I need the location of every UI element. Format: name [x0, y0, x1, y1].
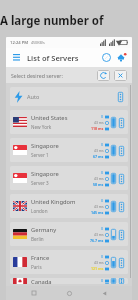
staticText: 76.7 ms	[90, 238, 104, 243]
button[interactable]: More options	[118, 278, 125, 284]
staticText: 43 ms	[94, 120, 104, 125]
staticText: 0	[101, 114, 104, 119]
staticText: 0	[101, 278, 104, 283]
button[interactable]: More options	[118, 200, 125, 213]
button[interactable]: Auto	[10, 87, 128, 106]
button[interactable]: Home	[62, 286, 76, 300]
staticText: 450KB/s	[31, 40, 45, 45]
staticText: Auto	[27, 93, 40, 100]
button[interactable]: Close	[114, 70, 127, 81]
staticText: United Kingdom	[31, 198, 76, 206]
staticText: London	[31, 208, 48, 214]
button[interactable]: Explore	[100, 51, 113, 64]
staticText: Singapore	[31, 142, 59, 150]
staticText: Germany	[31, 226, 57, 234]
staticText: New York	[31, 124, 52, 130]
staticText: 43 ms	[94, 204, 104, 209]
staticText: Canada	[31, 278, 52, 284]
button[interactable]: Singapore	[10, 138, 128, 162]
staticText: 0	[101, 142, 104, 147]
staticText: Paris	[31, 264, 42, 270]
staticText: 121 ms	[91, 266, 104, 271]
staticText: 43 ms	[94, 260, 104, 265]
staticText: Select desired server:	[11, 72, 63, 79]
staticText: A large number of servers	[0, 13, 138, 29]
button[interactable]: Singapore	[10, 166, 128, 190]
staticText: 43 ms	[94, 148, 104, 153]
staticText: 43 ms	[94, 232, 104, 237]
staticText: Server 1	[31, 152, 49, 158]
staticText: 118 ms	[91, 126, 104, 131]
button[interactable]: More options	[118, 256, 125, 269]
button[interactable]: Canada	[10, 278, 128, 284]
button[interactable]: Back	[97, 286, 111, 300]
button[interactable]: France	[10, 250, 128, 274]
staticText: 0	[101, 254, 104, 259]
button[interactable]: Refresh	[97, 70, 110, 81]
staticText: 67 ms	[93, 154, 104, 159]
staticText: 0	[101, 226, 104, 231]
staticText: 43 ms	[94, 176, 104, 181]
button[interactable]: Notifications	[114, 51, 127, 64]
staticText: Server 3	[31, 180, 49, 186]
button[interactable]: More options	[118, 116, 125, 129]
staticText: List of Servers	[27, 53, 79, 63]
staticText: 58 ms	[93, 182, 104, 187]
staticText: Berlin	[31, 236, 44, 242]
button[interactable]: United States	[10, 110, 128, 134]
button[interactable]: More options	[118, 172, 125, 185]
staticText: Singapore	[31, 170, 59, 178]
button[interactable]: Menu	[11, 52, 22, 63]
button[interactable]: More options	[117, 90, 124, 103]
button[interactable]: United Kingdom	[10, 194, 128, 218]
button[interactable]: More options	[118, 144, 125, 157]
staticText: 12:24 PM	[10, 40, 29, 46]
button[interactable]: More options	[118, 228, 125, 241]
button[interactable]: Germany	[10, 222, 128, 246]
staticText: United States	[31, 114, 68, 122]
staticText: France	[31, 254, 50, 262]
staticText: 0	[101, 170, 104, 175]
button[interactable]: Recents	[27, 286, 41, 300]
staticText: 145 ms	[91, 210, 104, 215]
staticText: 0	[101, 198, 104, 203]
